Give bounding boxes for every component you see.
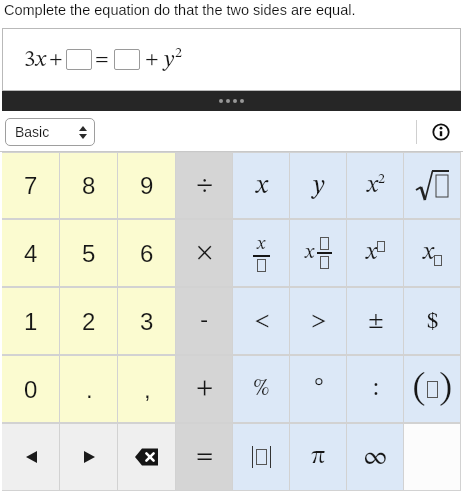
staticText: > [311,310,327,332]
staticText: % [253,377,270,401]
button[interactable]: x [404,219,461,287]
button[interactable]: . [60,355,118,423]
staticText: x [257,235,266,253]
button[interactable]: > [290,287,347,355]
button[interactable] [404,423,461,491]
staticText: ) [439,371,452,408]
staticText: 7 [24,172,38,199]
staticText: 0 [24,376,38,403]
button[interactable]: x [290,219,347,287]
staticText: + [196,377,214,401]
button[interactable]: - [176,287,233,355]
button[interactable]: x [347,219,404,287]
staticText: < [254,310,270,332]
staticText: - [200,308,209,334]
staticText: + [49,50,63,69]
staticText: = [95,50,109,69]
button[interactable]: < [233,287,290,355]
button[interactable]: x [233,219,290,287]
staticText: 8 [82,172,96,199]
button[interactable]: : [347,355,404,423]
staticText: x [256,173,268,199]
staticText: 3x [24,48,46,71]
staticText: ÷ [196,174,214,198]
button[interactable]: 2 [60,287,118,355]
staticText: y [164,48,175,71]
staticText: x [305,243,315,263]
button[interactable]: 9 [118,152,176,219]
button[interactable]: , [118,355,176,423]
staticText: $ [427,310,439,333]
button[interactable]: 0 [2,355,60,423]
staticText: x [423,241,434,265]
button[interactable]: x [233,152,290,219]
staticText: ° [314,377,324,401]
button[interactable]: ± [347,287,404,355]
button[interactable]: ∞ [347,423,404,491]
button[interactable]: 4 [2,219,60,287]
button[interactable]: 7 [2,152,60,219]
staticText: 6 [140,240,154,267]
staticText: x [366,241,377,265]
button[interactable]: 1 [2,287,60,355]
staticText: 1 [24,308,38,335]
button[interactable]: + [176,355,233,423]
button[interactable]: ° [290,355,347,423]
button[interactable]: 5 [60,219,118,287]
button[interactable] [432,123,450,141]
button[interactable] [60,423,118,491]
staticText: 2 [175,46,182,60]
button[interactable]: ÷ [176,152,233,219]
button[interactable]: Basic [5,118,95,146]
staticText: Complete the equation do that the two si… [4,2,356,18]
staticText: = [196,445,214,469]
staticText: 5 [82,240,96,267]
button[interactable]: % [233,355,290,423]
staticText: y [313,173,325,199]
staticText: 9 [140,172,154,199]
button[interactable]: 3 [118,287,176,355]
staticText: . [86,376,93,403]
button[interactable] [118,423,176,491]
staticText: 2 [378,172,385,186]
button[interactable]: 3x [2,28,461,91]
button[interactable]: = [176,423,233,491]
button[interactable]: ( [404,355,461,423]
staticText: Basic [15,124,50,140]
staticText: : [373,377,379,401]
staticText: ( [413,371,426,408]
button[interactable]: $ [404,287,461,355]
button[interactable]: 6 [118,219,176,287]
button[interactable]: × [176,219,233,287]
staticText: + [145,50,159,69]
staticText: , [144,376,151,403]
staticText: 2 [82,308,96,335]
staticText: × [196,241,214,265]
button[interactable]: x [347,152,404,219]
staticText: π [311,445,326,469]
staticText: ∞ [363,444,388,470]
staticText: 4 [24,240,38,267]
button[interactable]: π [290,423,347,491]
button[interactable] [2,423,60,491]
staticText: x [367,174,378,198]
button[interactable]: y [290,152,347,219]
button[interactable] [404,152,461,219]
button[interactable]: 8 [60,152,118,219]
staticText: 3 [140,308,154,335]
button[interactable] [233,423,290,491]
staticText: ± [368,310,384,332]
